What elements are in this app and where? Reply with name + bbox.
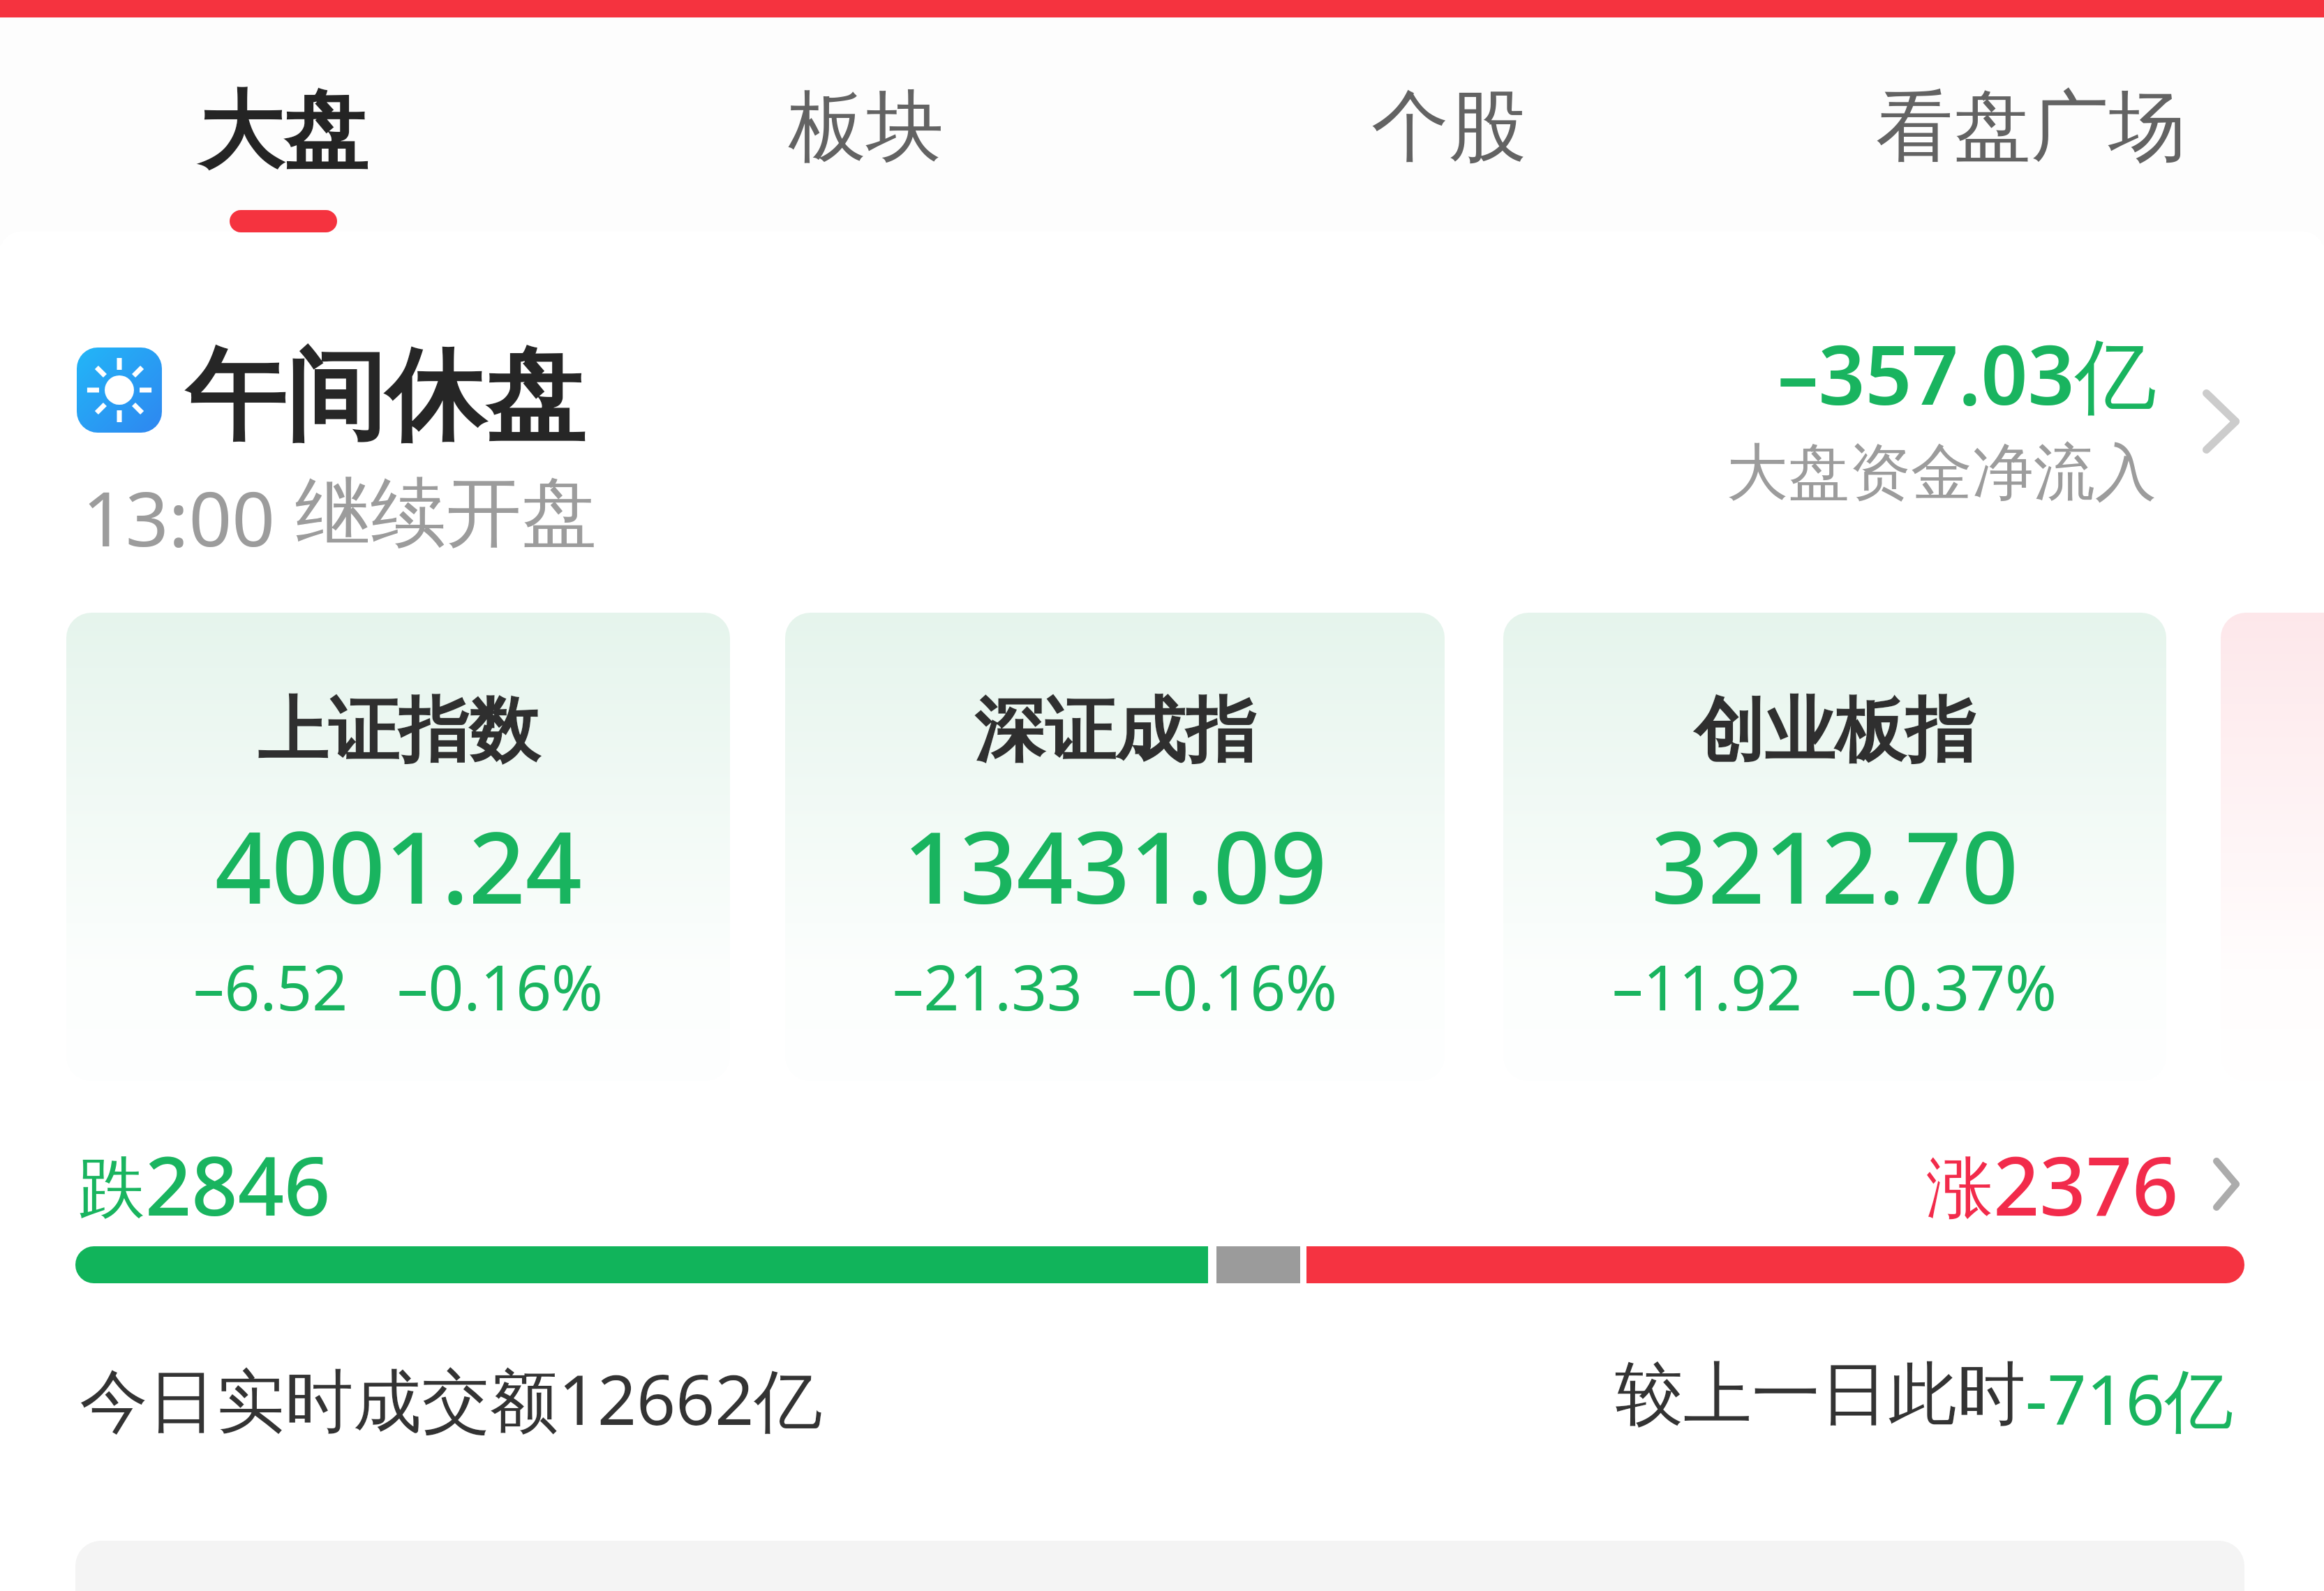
staticText: 2376 — [1993, 1129, 2179, 1234]
staticText: 2846 — [145, 1129, 331, 1234]
button[interactable]: 涨跌家数详情 — [2172, 1132, 2281, 1237]
staticText: –0.37% — [1851, 944, 2057, 1029]
staticText: –0.16% — [1131, 944, 1338, 1029]
staticText: 13431.09 — [903, 798, 1327, 932]
staticText: 大盘 — [199, 78, 368, 184]
staticText: –357.03亿 — [1778, 318, 2157, 429]
staticText: 创业板指 — [1694, 687, 1976, 775]
staticText: 板块 — [789, 78, 944, 176]
staticText: –0.16% — [397, 944, 604, 1029]
staticText: 深证成指 — [974, 687, 1256, 775]
staticText: 13:00 — [82, 466, 295, 569]
staticText: 个股 — [1371, 78, 1526, 176]
staticText: 4001.24 — [215, 798, 582, 932]
button[interactable]: 板块 — [720, 78, 1013, 281]
staticText: 午间休盘 — [186, 334, 585, 459]
button[interactable]: 创业板指 — [1503, 613, 2166, 1081]
button[interactable]: 午间休盘 — [0, 300, 2324, 558]
button[interactable]: 大盘 — [137, 78, 430, 281]
staticText: 大盘资金净流入 — [1727, 434, 2157, 511]
staticText: 较上一日此时 — [1615, 1352, 2025, 1435]
staticText: 涨 — [1926, 1146, 1993, 1231]
staticText: 跌 — [78, 1146, 145, 1231]
staticText: 3212.70 — [1651, 798, 2018, 932]
button[interactable]: 个股 — [1302, 78, 1595, 281]
button[interactable] — [2221, 613, 2324, 1081]
staticText: 上证指数 — [258, 687, 539, 775]
staticText: –21.33 — [893, 944, 1082, 1029]
staticText: 看盘广场 — [1876, 78, 2186, 176]
button[interactable]: 上证指数 — [66, 613, 730, 1081]
staticText: –6.52 — [193, 944, 348, 1029]
button[interactable]: 看盘广场 — [1835, 78, 2226, 281]
staticText: –11.92 — [1612, 944, 1802, 1029]
button[interactable]: 大盘资金净流入详情 — [2161, 361, 2281, 481]
staticText: 今日实时成交额12662亿 — [80, 1352, 823, 1435]
staticText: 继续开盘 — [295, 466, 597, 561]
staticText: -716亿 — [2025, 1352, 2233, 1435]
button[interactable]: 深证成指 — [785, 613, 1445, 1081]
button[interactable]: 跌 — [0, 1123, 2324, 1228]
